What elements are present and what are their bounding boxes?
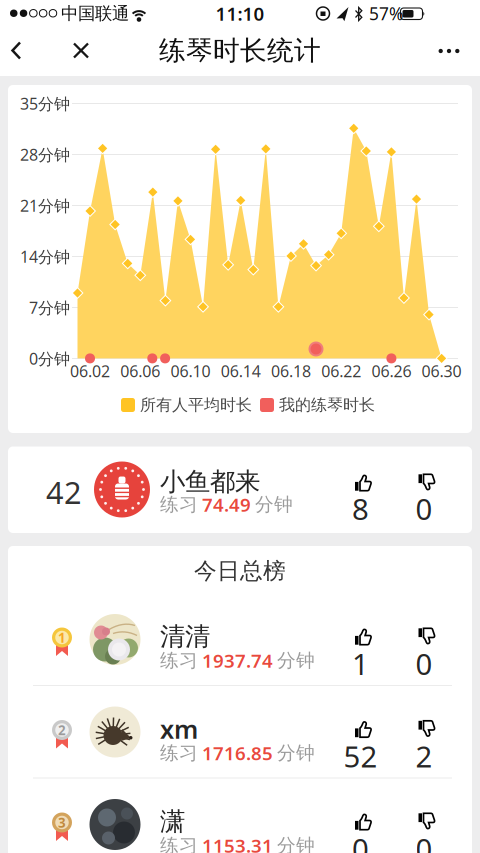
staticText: 0 (415, 489, 432, 528)
staticText: 所有人平均时长 (140, 395, 252, 415)
button[interactable]: 返回 (0, 31, 36, 71)
staticText: 分钟 (277, 834, 315, 853)
staticText: 11:10 (215, 1, 264, 26)
staticText: 21分钟 (20, 195, 70, 216)
staticText: 52 (343, 736, 377, 775)
staticText: 分钟 (277, 741, 315, 764)
staticText: 3 (58, 814, 66, 831)
button[interactable]: 赞 (339, 469, 387, 531)
staticText: 1937.74 (202, 648, 273, 673)
staticText: 06.02 (70, 360, 110, 382)
staticText: 1716.85 (202, 741, 273, 765)
staticText: 06.18 (271, 360, 311, 382)
staticText: 潇 (160, 806, 185, 837)
staticText: 1 (58, 629, 66, 646)
staticText: 06.30 (422, 360, 462, 382)
staticText: 42 (46, 472, 82, 512)
staticText: 今日总榜 (194, 557, 286, 585)
staticText: 0 (415, 644, 432, 683)
button[interactable]: 关闭 (61, 31, 101, 71)
staticText: xm (160, 712, 198, 746)
staticText: 74.49 (202, 492, 251, 517)
button[interactable]: 清清 (0, 0, 464, 90)
button[interactable]: xm (0, 0, 464, 90)
staticText: 14分钟 (20, 246, 70, 267)
staticText: 练习 (160, 834, 198, 853)
staticText: 0 (352, 829, 369, 853)
staticText: 我的练琴时长 (279, 395, 375, 415)
staticText: 57% (369, 2, 403, 25)
staticText: 小鱼都来 (160, 466, 260, 497)
button[interactable]: 小鱼都来 (8, 446, 472, 533)
staticText: 练习 (160, 493, 198, 516)
staticText: 练习 (160, 741, 198, 764)
staticText: 7分钟 (29, 297, 70, 318)
staticText: 06.22 (321, 360, 361, 382)
staticText: 28分钟 (20, 144, 70, 165)
staticText: 06.06 (120, 360, 160, 382)
staticText: 0 (415, 829, 432, 853)
button[interactable]: 更多 (427, 31, 471, 71)
button[interactable]: 踩 (403, 807, 451, 853)
staticText: 35分钟 (20, 93, 70, 114)
staticText: 1153.31 (202, 833, 273, 853)
staticText: 06.10 (170, 360, 210, 382)
button[interactable]: 踩 (403, 714, 451, 776)
staticText: 2 (58, 721, 66, 739)
staticText: 2 (415, 736, 432, 775)
staticText: 06.26 (371, 360, 411, 382)
button[interactable]: 踩 (403, 468, 451, 530)
staticText: 清清 (160, 621, 210, 652)
staticText: 中国联通 (61, 3, 129, 24)
button[interactable]: 赞 (339, 808, 387, 853)
staticText: 06.14 (221, 360, 261, 382)
staticText: 练习 (160, 649, 198, 672)
staticText: 0分钟 (29, 348, 70, 369)
button[interactable]: 踩 (403, 622, 451, 684)
staticText: 1 (352, 644, 369, 683)
button[interactable]: 赞 (339, 715, 387, 777)
staticText: 练琴时长统计 (159, 34, 321, 67)
staticText: 分钟 (277, 649, 315, 672)
staticText: 8 (352, 489, 369, 528)
button[interactable]: 潇 (0, 0, 464, 90)
staticText: 分钟 (255, 493, 293, 516)
button[interactable]: 赞 (339, 623, 387, 685)
